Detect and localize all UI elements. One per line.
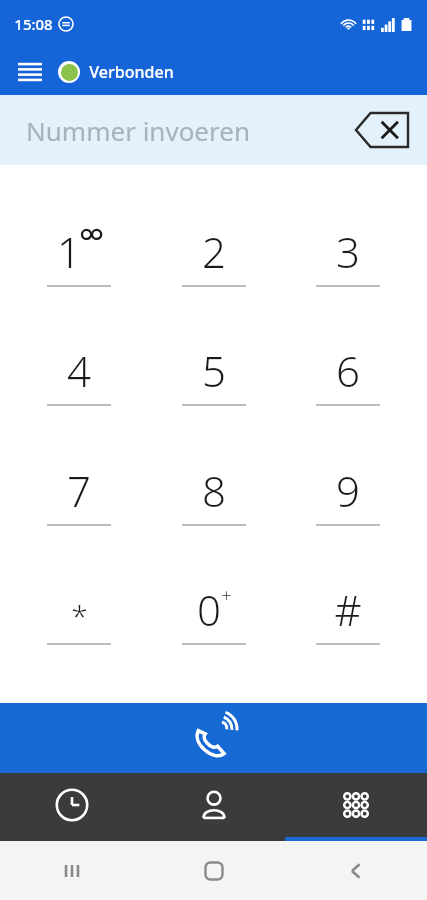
- staticText: 4: [67, 342, 91, 398]
- staticText: *: [71, 595, 88, 636]
- button[interactable]: 4: [24, 326, 134, 422]
- staticText: #: [334, 581, 362, 637]
- staticText: 3: [336, 223, 360, 279]
- button[interactable]: Recent apps: [0, 841, 143, 900]
- button[interactable]: 8: [159, 446, 269, 542]
- staticText: 15:08: [14, 14, 53, 34]
- staticText: Verbonden: [89, 61, 174, 83]
- button[interactable]: 5: [159, 326, 269, 422]
- staticText: Nummer invoeren: [26, 113, 250, 148]
- button[interactable]: 9: [293, 446, 403, 542]
- staticText: 6: [336, 342, 360, 398]
- button[interactable]: Menu: [8, 50, 52, 94]
- button[interactable]: Back: [285, 841, 427, 900]
- staticText: 5: [202, 342, 226, 398]
- button[interactable]: Home: [143, 841, 285, 900]
- button[interactable]: 6: [293, 326, 403, 422]
- staticText: 2: [202, 223, 226, 279]
- button[interactable]: Contacts: [143, 773, 285, 837]
- button[interactable]: 1: [24, 207, 134, 303]
- staticText: 9: [336, 462, 360, 518]
- button[interactable]: 3: [293, 207, 403, 303]
- button[interactable]: #: [293, 565, 403, 661]
- staticText: 7: [67, 462, 91, 518]
- staticText: 1: [57, 223, 81, 279]
- staticText: 0: [197, 581, 221, 637]
- button[interactable]: 2: [159, 207, 269, 303]
- button[interactable]: Recents: [0, 773, 143, 837]
- button[interactable]: *: [24, 565, 134, 661]
- button[interactable]: 7: [24, 446, 134, 542]
- button[interactable]: 0: [159, 565, 269, 661]
- button[interactable]: Backspace: [351, 106, 413, 154]
- button[interactable]: Call: [0, 703, 427, 773]
- staticText: +: [221, 583, 232, 608]
- button[interactable]: Keypad: [285, 773, 427, 837]
- staticText: 8: [202, 462, 226, 518]
